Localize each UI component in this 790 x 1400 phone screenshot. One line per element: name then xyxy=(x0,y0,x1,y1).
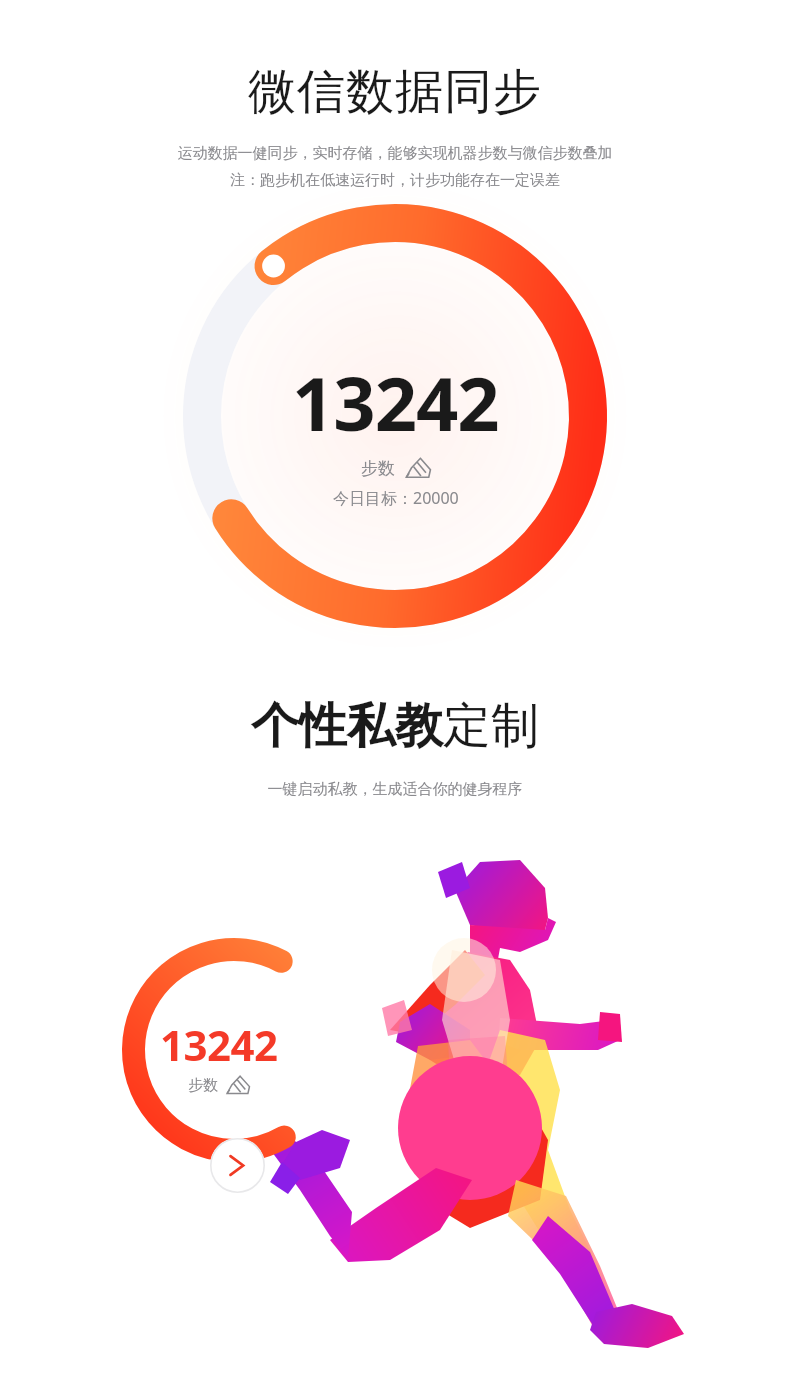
staticText: 步数 xyxy=(188,1076,218,1095)
staticText: 微信数据同步 xyxy=(0,62,790,122)
button[interactable]: Start personal training xyxy=(210,1138,265,1193)
staticText: 一键启动私教，生成适合你的健身程序 xyxy=(0,780,790,799)
staticText: 今日目标：20000 xyxy=(333,487,459,509)
staticText: 注：跑步机在低速运行时，计步功能存在一定误差 xyxy=(0,171,790,190)
staticText: 步数 xyxy=(361,458,395,479)
staticText: 13242 xyxy=(160,1016,278,1073)
staticText: 定制 xyxy=(443,696,539,756)
staticText: 个性私教 xyxy=(251,696,443,756)
staticText: 13242 xyxy=(292,352,499,453)
staticText: 运动数据一健同步，实时存储，能够实现机器步数与微信步数叠加 xyxy=(0,144,790,163)
